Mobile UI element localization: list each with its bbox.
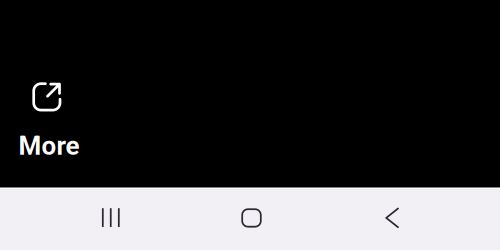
- button[interactable]: Home: [227, 194, 276, 242]
- button[interactable]: More: [1, 71, 100, 178]
- button[interactable]: Recent apps: [88, 194, 134, 242]
- button[interactable]: Back: [371, 193, 413, 242]
- staticText: More: [19, 131, 80, 161]
